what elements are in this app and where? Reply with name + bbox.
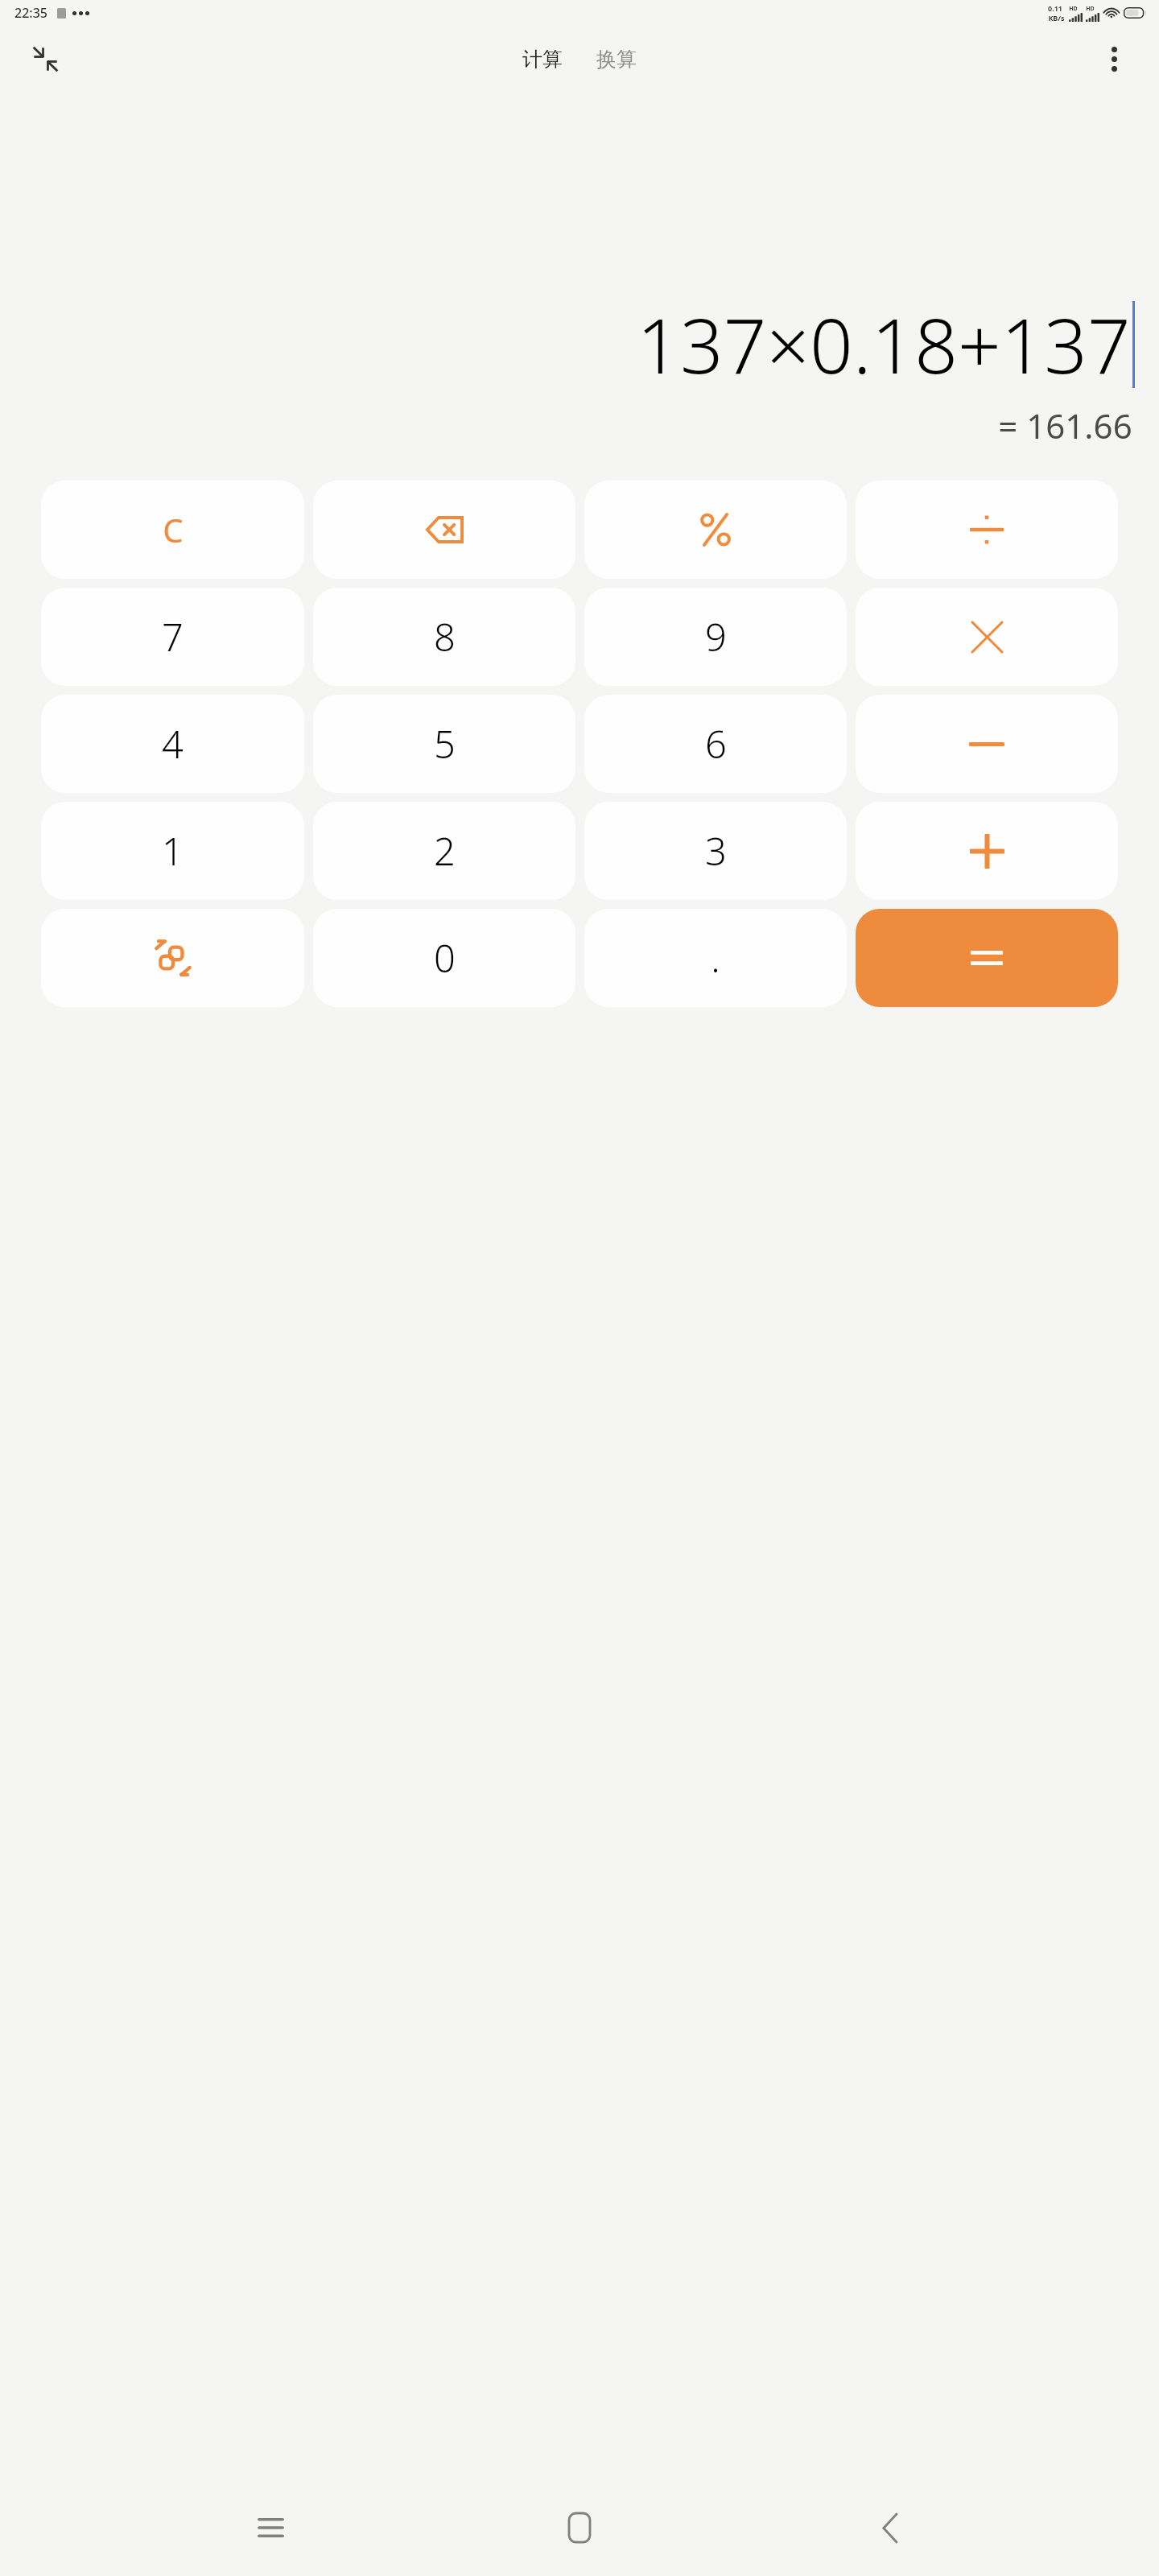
staticText: 22:35 (14, 4, 47, 22)
staticText: 2 (434, 825, 456, 877)
staticText: 137×0.18+137 (637, 293, 1131, 396)
staticText: 9 (705, 611, 727, 663)
staticText: 0.11 (1048, 3, 1062, 13)
staticText: C (163, 508, 184, 551)
button[interactable]: Clear (41, 481, 304, 579)
staticText: KB/s (1048, 13, 1065, 23)
button[interactable]: More options (1091, 36, 1136, 81)
staticText: HD (1086, 5, 1095, 13)
staticText: 3 (705, 825, 727, 877)
button[interactable]: Backspace (313, 481, 575, 579)
staticText: HD (1069, 5, 1078, 13)
button[interactable]: Plus (856, 802, 1118, 900)
button[interactable]: Divide (856, 481, 1118, 579)
button[interactable]: Equals (856, 909, 1118, 1007)
staticText: = 161.66 (998, 402, 1132, 448)
button[interactable]: 8 (313, 588, 575, 686)
button[interactable]: Multiply (856, 588, 1118, 686)
button[interactable]: 7 (41, 588, 304, 686)
button[interactable]: 6 (584, 695, 847, 793)
button[interactable]: 4 (41, 695, 304, 793)
button[interactable]: . (584, 909, 847, 1007)
staticText: 0 (434, 932, 456, 984)
button[interactable]: 换算 (588, 40, 645, 78)
button[interactable]: 2 (313, 802, 575, 900)
staticText: 计算 (522, 47, 563, 72)
button[interactable]: 5 (313, 695, 575, 793)
button[interactable]: Home (541, 2489, 618, 2566)
staticText: 4 (162, 718, 184, 770)
button[interactable]: Scientific mode (41, 909, 304, 1007)
button[interactable]: Recent apps (232, 2489, 309, 2566)
staticText: 6 (705, 718, 727, 770)
button[interactable]: Percent (584, 481, 847, 579)
button[interactable]: Back (850, 2489, 927, 2566)
button[interactable]: 0 (313, 909, 575, 1007)
staticText: 5 (434, 718, 456, 770)
button[interactable]: Minus (856, 695, 1118, 793)
button[interactable]: 1 (41, 802, 304, 900)
button[interactable]: 9 (584, 588, 847, 686)
button[interactable]: Collapse (23, 36, 68, 81)
staticText: 7 (162, 611, 184, 663)
staticText: 1 (162, 825, 184, 877)
staticText: 换算 (596, 47, 637, 72)
staticText: . (711, 932, 720, 984)
button[interactable]: 计算 (514, 40, 571, 78)
button[interactable]: 3 (584, 802, 847, 900)
staticText: 8 (434, 611, 456, 663)
